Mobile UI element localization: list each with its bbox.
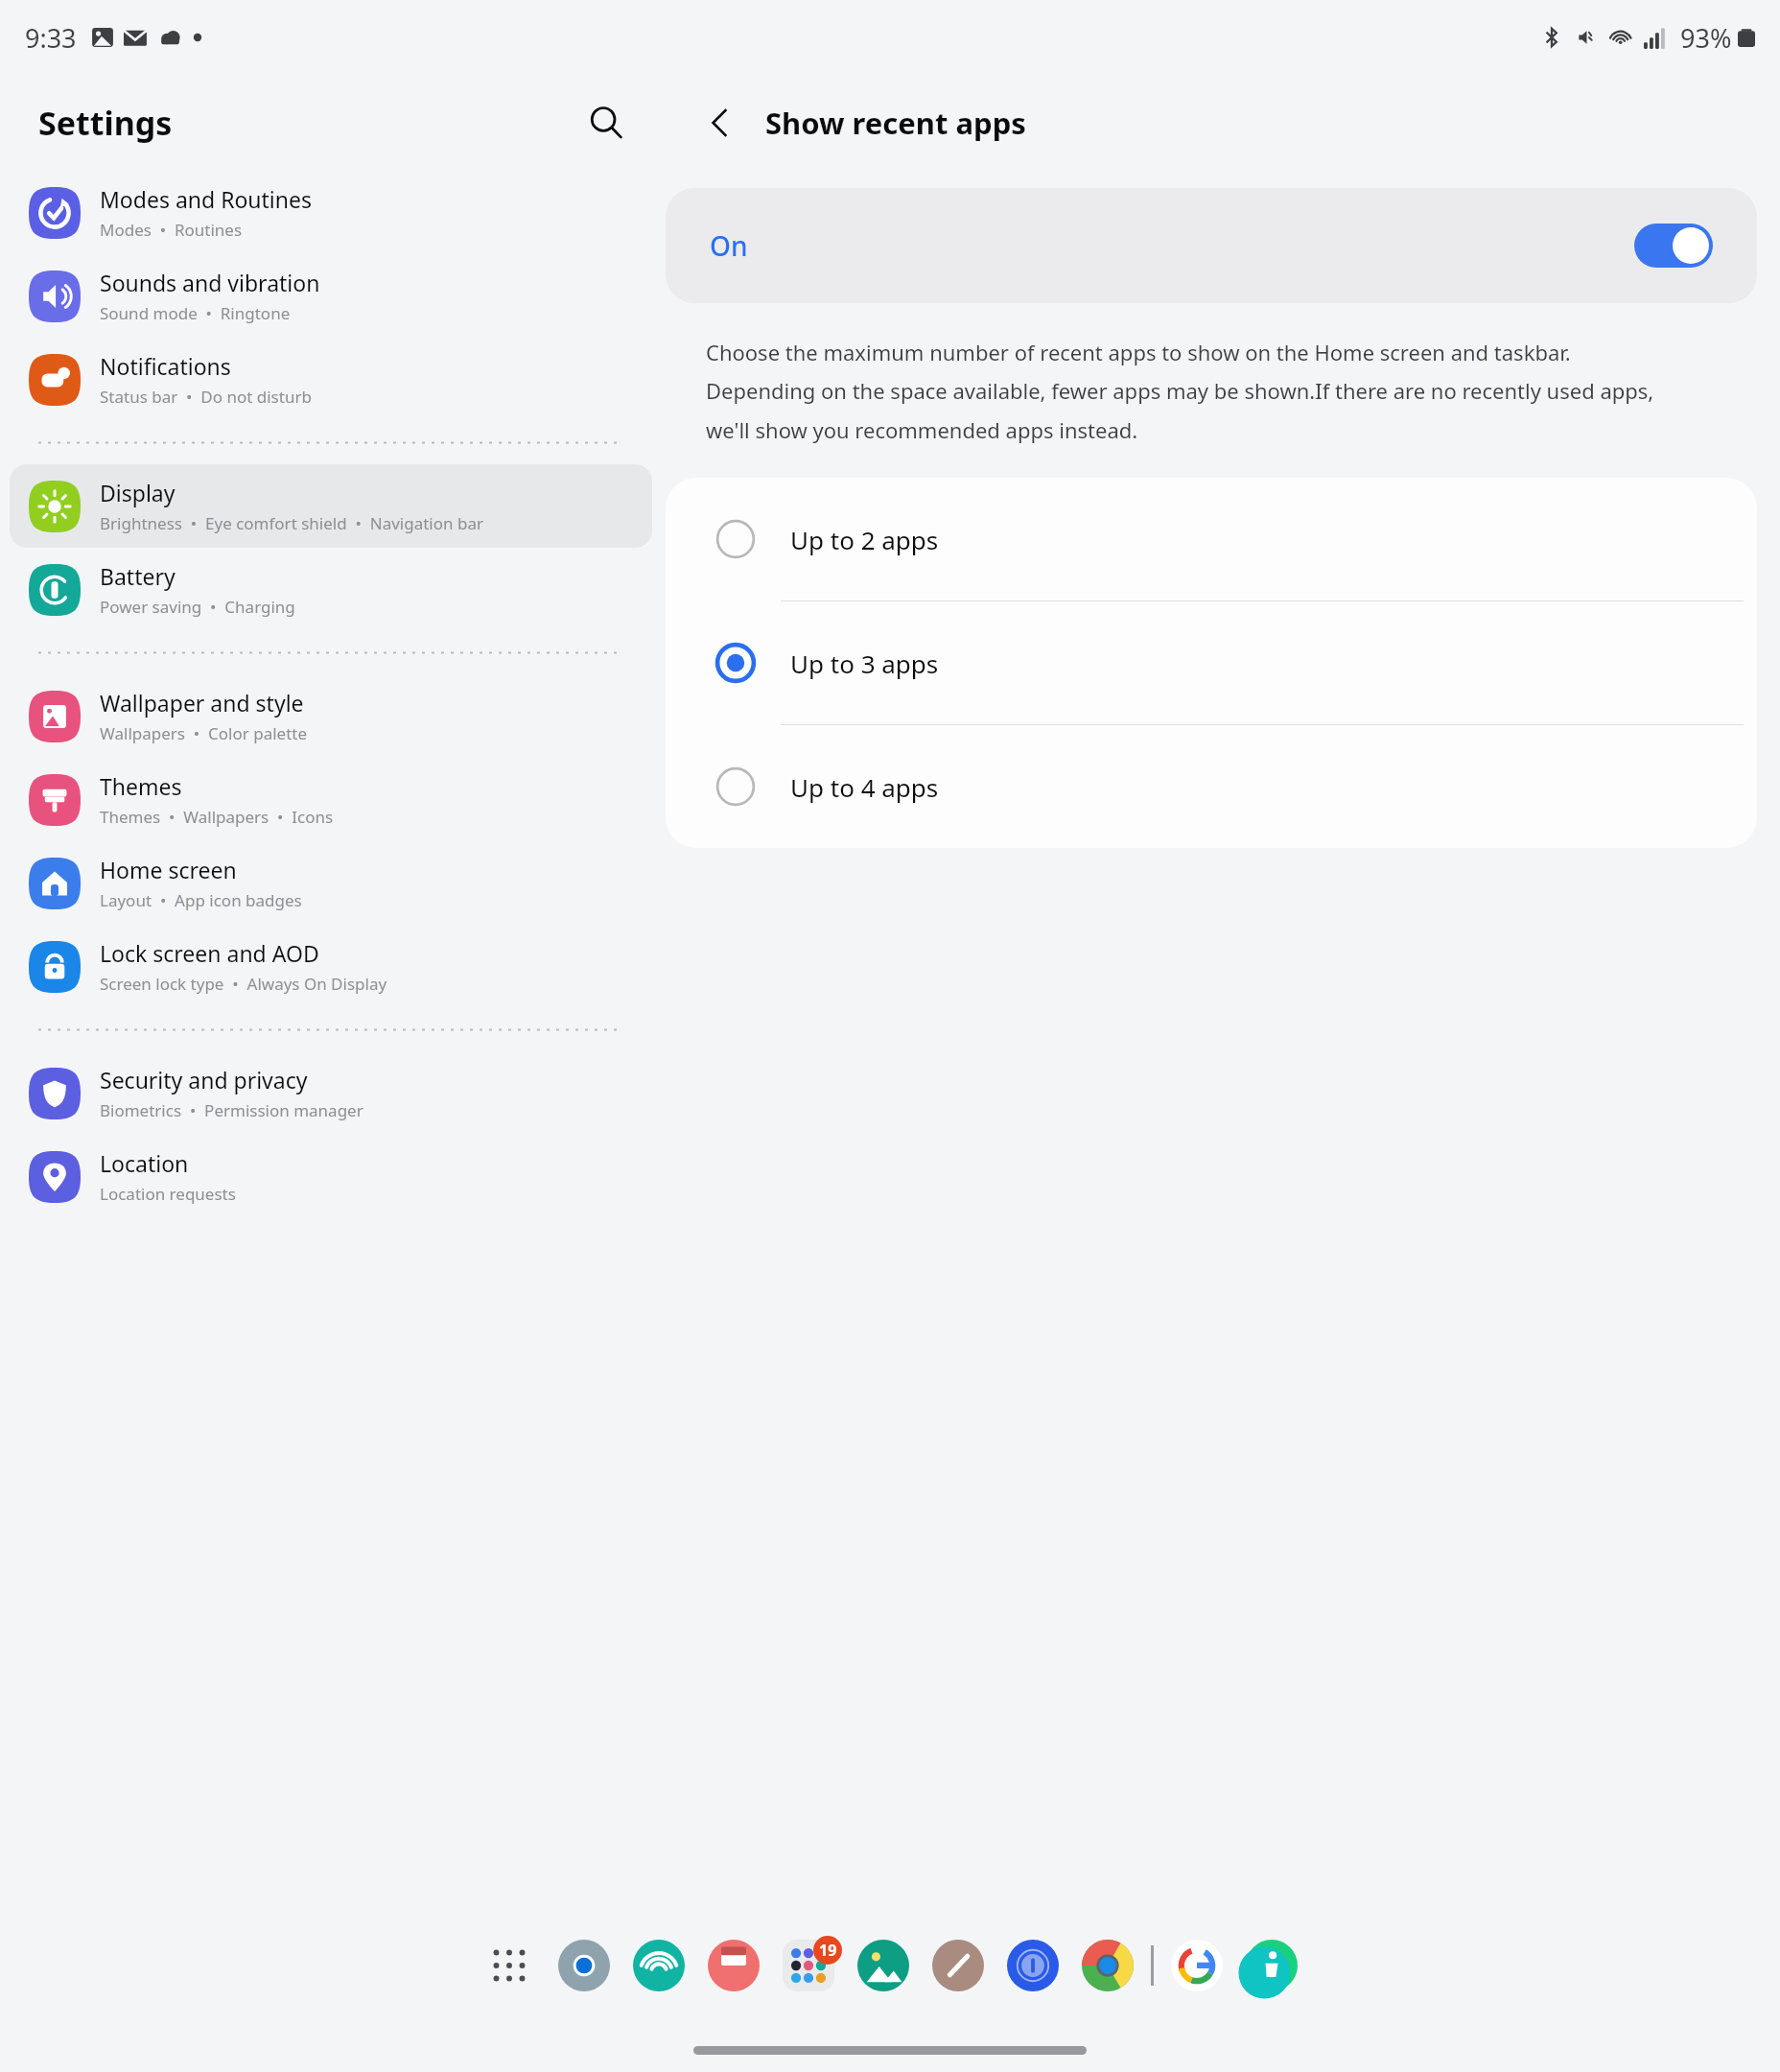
button[interactable]: Up to 3 apps — [666, 601, 1757, 724]
staticText: Choose the maximum number of recent apps… — [706, 338, 1684, 445]
button[interactable]: Sounds and vibration — [10, 254, 652, 338]
button[interactable]: Spotify — [631, 1938, 687, 1993]
staticText: Biometrics • Permission manager — [100, 1099, 363, 1121]
button[interactable]: Notes — [930, 1938, 986, 1993]
staticText: Status bar • Do not disturb — [100, 386, 312, 408]
button[interactable]: Gallery — [855, 1938, 911, 1993]
button[interactable]: Up to 4 apps — [666, 725, 1757, 848]
button[interactable]: App folder — [781, 1938, 836, 1993]
staticText: Themes — [100, 771, 182, 801]
staticText: Power saving • Charging — [100, 596, 295, 618]
button[interactable]: Authenticator — [1005, 1938, 1061, 1993]
staticText: Home screen — [100, 855, 237, 884]
staticText: Location — [100, 1148, 189, 1178]
button[interactable]: Modes and Routines — [10, 171, 652, 254]
staticText: Up to 4 apps — [790, 770, 939, 804]
staticText: Modes and Routines — [100, 184, 313, 214]
button[interactable]: Security and privacy — [10, 1051, 652, 1135]
button[interactable]: Chrome — [1080, 1938, 1136, 1993]
staticText: Sounds and vibration — [100, 268, 320, 297]
button[interactable]: Lock screen and AOD — [10, 925, 652, 1008]
button[interactable]: Gmail — [706, 1938, 761, 1993]
staticText: Brightness • Eye comfort shield • Naviga… — [100, 512, 483, 534]
staticText: Modes • Routines — [100, 219, 243, 241]
staticText: Up to 2 apps — [790, 523, 939, 556]
staticText: Sound mode • Ringtone — [100, 302, 291, 324]
staticText: Lock screen and AOD — [100, 938, 319, 968]
staticText: 9:33 — [25, 20, 77, 56]
button[interactable]: Battery — [10, 548, 652, 631]
button[interactable]: Home screen — [10, 841, 652, 925]
button[interactable]: Camera — [556, 1938, 612, 1993]
button[interactable]: Themes — [10, 758, 652, 841]
button[interactable]: On — [666, 188, 1757, 303]
button[interactable]: Up to 2 apps — [666, 478, 1757, 600]
staticText: 19 — [819, 1940, 837, 1961]
staticText: Security and privacy — [100, 1065, 308, 1095]
staticText: Screen lock type • Always On Display — [100, 973, 387, 995]
staticText: Battery — [100, 561, 176, 591]
staticText: Themes • Wallpapers • Icons — [100, 806, 334, 828]
staticText: 93% — [1680, 20, 1732, 56]
button[interactable]: Google — [1169, 1938, 1225, 1993]
button[interactable]: Wallpaper and style — [10, 674, 652, 758]
button[interactable]: Apps — [481, 1938, 537, 1993]
button[interactable]: Display — [10, 464, 652, 548]
button[interactable]: Health — [1244, 1938, 1300, 1993]
staticText: On — [710, 227, 748, 264]
staticText: Up to 3 apps — [790, 647, 939, 680]
staticText: Show recent apps — [765, 103, 1026, 143]
staticText: Wallpaper and style — [100, 688, 304, 718]
staticText: Settings — [38, 101, 173, 145]
button[interactable]: Notifications — [10, 338, 652, 421]
staticText: Location requests — [100, 1183, 236, 1205]
button[interactable]: Location — [10, 1135, 652, 1218]
staticText: Layout • App icon badges — [100, 889, 302, 911]
staticText: Wallpapers • Color palette — [100, 722, 308, 744]
staticText: Display — [100, 478, 176, 507]
staticText: Notifications — [100, 351, 231, 381]
button[interactable]: Search — [579, 96, 633, 150]
button[interactable]: Back — [692, 95, 748, 151]
